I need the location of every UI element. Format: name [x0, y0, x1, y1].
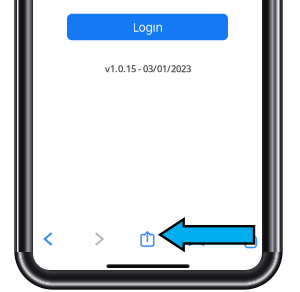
- button[interactable]: Back: [26, 219, 70, 259]
- staticText: v1.0.15 - 03/01/2023: [105, 62, 191, 75]
- staticText: Login: [132, 19, 162, 35]
- button[interactable]: Tabs: [225, 219, 269, 259]
- button[interactable]: Share: [125, 219, 169, 259]
- button[interactable]: Bookmarks: [174, 219, 218, 259]
- button[interactable]: Forward: [77, 219, 121, 259]
- button[interactable]: Login: [67, 14, 228, 40]
